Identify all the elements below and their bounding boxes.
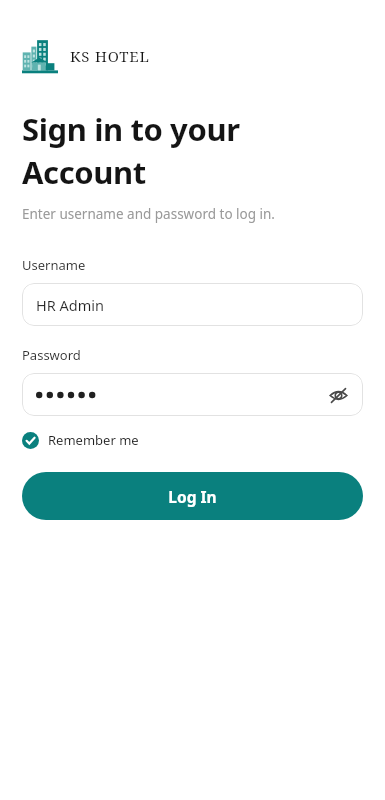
staticText: Username [22,256,86,274]
staticText: Enter username and password to log in. [22,205,275,223]
staticText: Log In [168,486,217,507]
button[interactable]: HR Admin [22,283,363,326]
button[interactable]: Show password [323,380,353,410]
staticText: Remember me [48,431,139,449]
staticText: HR Admin [36,295,104,315]
staticText: Password [22,346,81,364]
button[interactable]: Remember me [22,431,139,449]
staticText: Sign in to your Account [22,108,240,193]
button[interactable]: Show password [22,373,363,416]
button[interactable]: Log In [22,472,363,520]
staticText: KS HOTEL [70,46,150,66]
button[interactable]: KS HOTEL [22,38,150,74]
